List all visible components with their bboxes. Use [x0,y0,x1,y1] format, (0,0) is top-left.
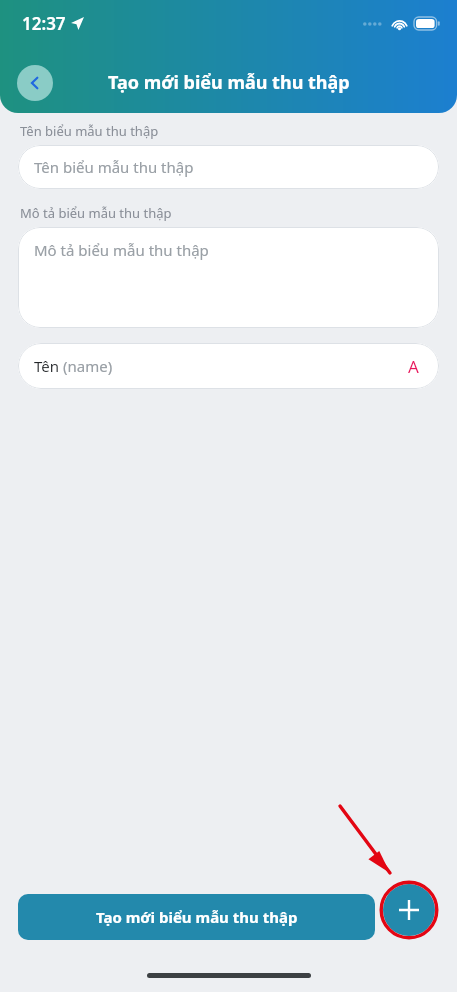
staticText: Mô tả biểu mẫu thu thập [20,204,172,222]
staticText: (name) [63,356,113,376]
button[interactable]: Tạo mới biểu mẫu thu thập [18,894,375,940]
staticText: Tạo mới biểu mẫu thu thập [108,70,350,95]
staticText: Tạo mới biểu mẫu thu thập [96,907,298,927]
button[interactable]: Tên [18,343,439,389]
button[interactable]: Back [17,65,53,101]
staticText: Tên biểu mẫu thu thập [34,157,194,177]
staticText: 12:37 [22,12,66,35]
staticText: A [408,355,419,378]
button[interactable]: Add [383,884,435,936]
staticText: Tên [34,356,63,376]
button[interactable]: Tên biểu mẫu thu thập [18,145,439,189]
button[interactable]: Mô tả biểu mẫu thu thập [18,227,439,328]
staticText: Mô tả biểu mẫu thu thập [34,240,209,260]
staticText: Tên biểu mẫu thu thập [20,122,159,140]
